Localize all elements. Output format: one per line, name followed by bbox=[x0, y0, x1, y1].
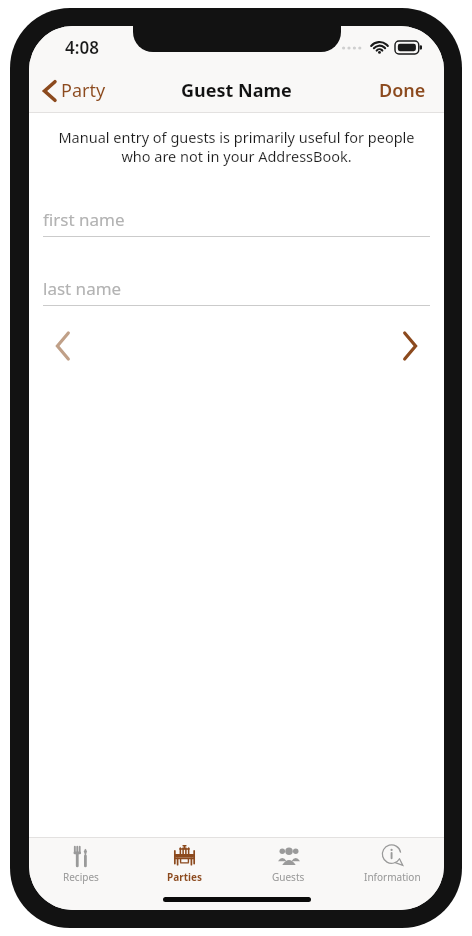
button[interactable]: Next bbox=[388, 324, 432, 368]
button[interactable]: first name bbox=[43, 208, 430, 237]
staticText: Recipes bbox=[63, 870, 99, 884]
button[interactable]: last name bbox=[43, 277, 430, 306]
button[interactable]: Parties bbox=[132, 838, 236, 888]
staticText: Manual entry of guests is primarily usef… bbox=[43, 127, 430, 166]
staticText: Done bbox=[379, 78, 426, 103]
staticText: Information bbox=[364, 870, 421, 884]
staticText: Guests bbox=[272, 870, 305, 884]
staticText: Parties bbox=[167, 870, 202, 884]
button[interactable]: Guests bbox=[236, 838, 340, 888]
staticText: last name bbox=[43, 277, 122, 300]
button[interactable]: Recipes bbox=[29, 838, 132, 888]
staticText: Guest Name bbox=[181, 78, 292, 103]
staticText: 4:08 bbox=[65, 36, 99, 59]
staticText: Party bbox=[61, 78, 106, 103]
button[interactable]: Previous bbox=[41, 324, 85, 368]
staticText: first name bbox=[43, 208, 125, 231]
button[interactable]: Information bbox=[340, 838, 444, 888]
button[interactable]: Done bbox=[375, 74, 430, 107]
button[interactable]: Party bbox=[39, 74, 110, 107]
